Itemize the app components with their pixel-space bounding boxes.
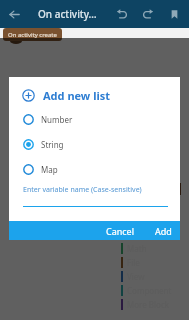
staticText: Add new list [43,88,111,103]
button[interactable]: Number [9,110,180,128]
button[interactable]: View [119,269,189,283]
button[interactable]: Cancel [100,222,141,240]
staticText: Cancel [106,225,135,237]
staticText: Add [155,225,172,237]
staticText: Number [41,114,73,125]
button[interactable]: Add [149,222,178,240]
button[interactable]: Component [119,283,189,297]
button[interactable]: Map [9,160,180,178]
button[interactable]: Add new list [9,88,180,103]
button[interactable]: Bookmark [161,1,187,27]
button[interactable]: Math [119,241,189,255]
staticText: Enter variable name (Case-sensitive) [23,185,142,195]
staticText: Map [41,164,58,175]
staticText: On activity create [8,31,57,39]
button[interactable]: String [9,135,180,153]
staticText: String [41,139,64,150]
button[interactable]: Redo [135,1,161,27]
button[interactable]: File [119,255,189,269]
button[interactable]: More Block [119,297,189,311]
button[interactable]: Undo [109,1,135,27]
button[interactable]: Back [0,0,28,28]
button[interactable]: On activity create [3,28,62,41]
staticText: On activity… [38,7,97,21]
